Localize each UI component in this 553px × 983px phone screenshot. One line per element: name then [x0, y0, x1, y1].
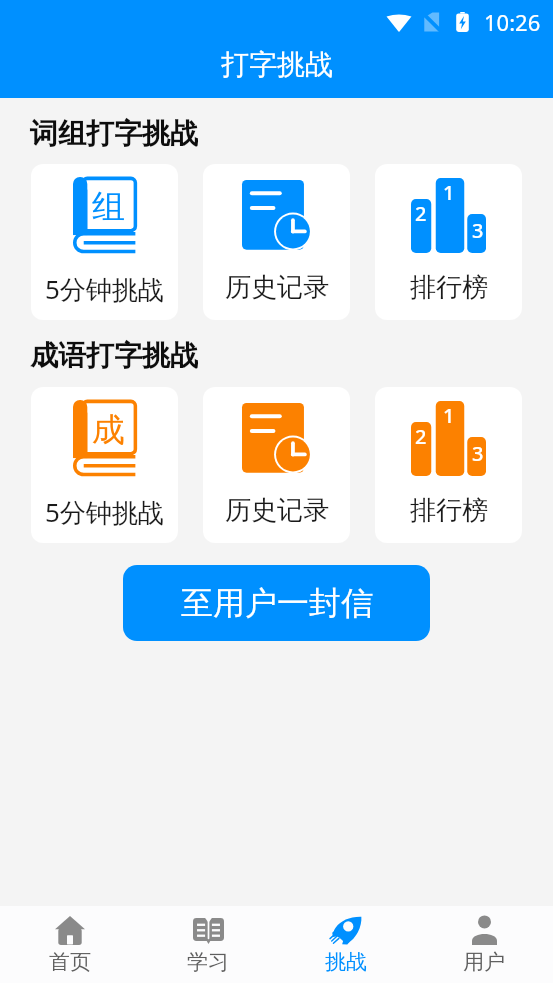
button[interactable]: 学习 — [139, 906, 277, 983]
button[interactable]: 2 — [375, 164, 522, 320]
staticText: 历史记录 — [225, 494, 329, 527]
button[interactable]: 组 — [31, 164, 178, 320]
staticText: 1 — [443, 402, 455, 424]
staticText: 用户 — [463, 949, 505, 975]
staticText: 打字挑战 — [221, 47, 333, 82]
staticText: 10:26 — [484, 7, 541, 37]
button[interactable]: 成 — [31, 387, 178, 543]
staticText: 排行榜 — [410, 494, 488, 527]
staticText: 成 — [92, 409, 125, 445]
staticText: 3 — [472, 440, 484, 462]
staticText: 成语打字挑战 — [30, 338, 198, 373]
staticText: 2 — [415, 423, 427, 445]
staticText: 首页 — [49, 949, 91, 975]
button[interactable]: 挑战 — [277, 906, 415, 983]
staticText: 至用户一封信 — [181, 583, 373, 623]
button[interactable]: 至用户一封信 — [123, 565, 430, 641]
staticText: 5分钟挑战 — [45, 271, 164, 307]
button[interactable]: 首页 — [0, 906, 139, 983]
button[interactable]: 历史记录 — [203, 164, 350, 320]
staticText: 组 — [92, 186, 125, 222]
staticText: 挑战 — [325, 949, 367, 975]
staticText: 1 — [443, 179, 455, 201]
staticText: 排行榜 — [410, 271, 488, 304]
button[interactable]: 2 — [375, 387, 522, 543]
button[interactable]: 历史记录 — [203, 387, 350, 543]
staticText: 2 — [415, 200, 427, 222]
staticText: 学习 — [187, 949, 229, 975]
staticText: 词组打字挑战 — [30, 116, 198, 151]
button[interactable]: 用户 — [415, 906, 553, 983]
staticText: 3 — [472, 217, 484, 239]
staticText: 历史记录 — [225, 271, 329, 304]
staticText: 5分钟挑战 — [45, 494, 164, 530]
